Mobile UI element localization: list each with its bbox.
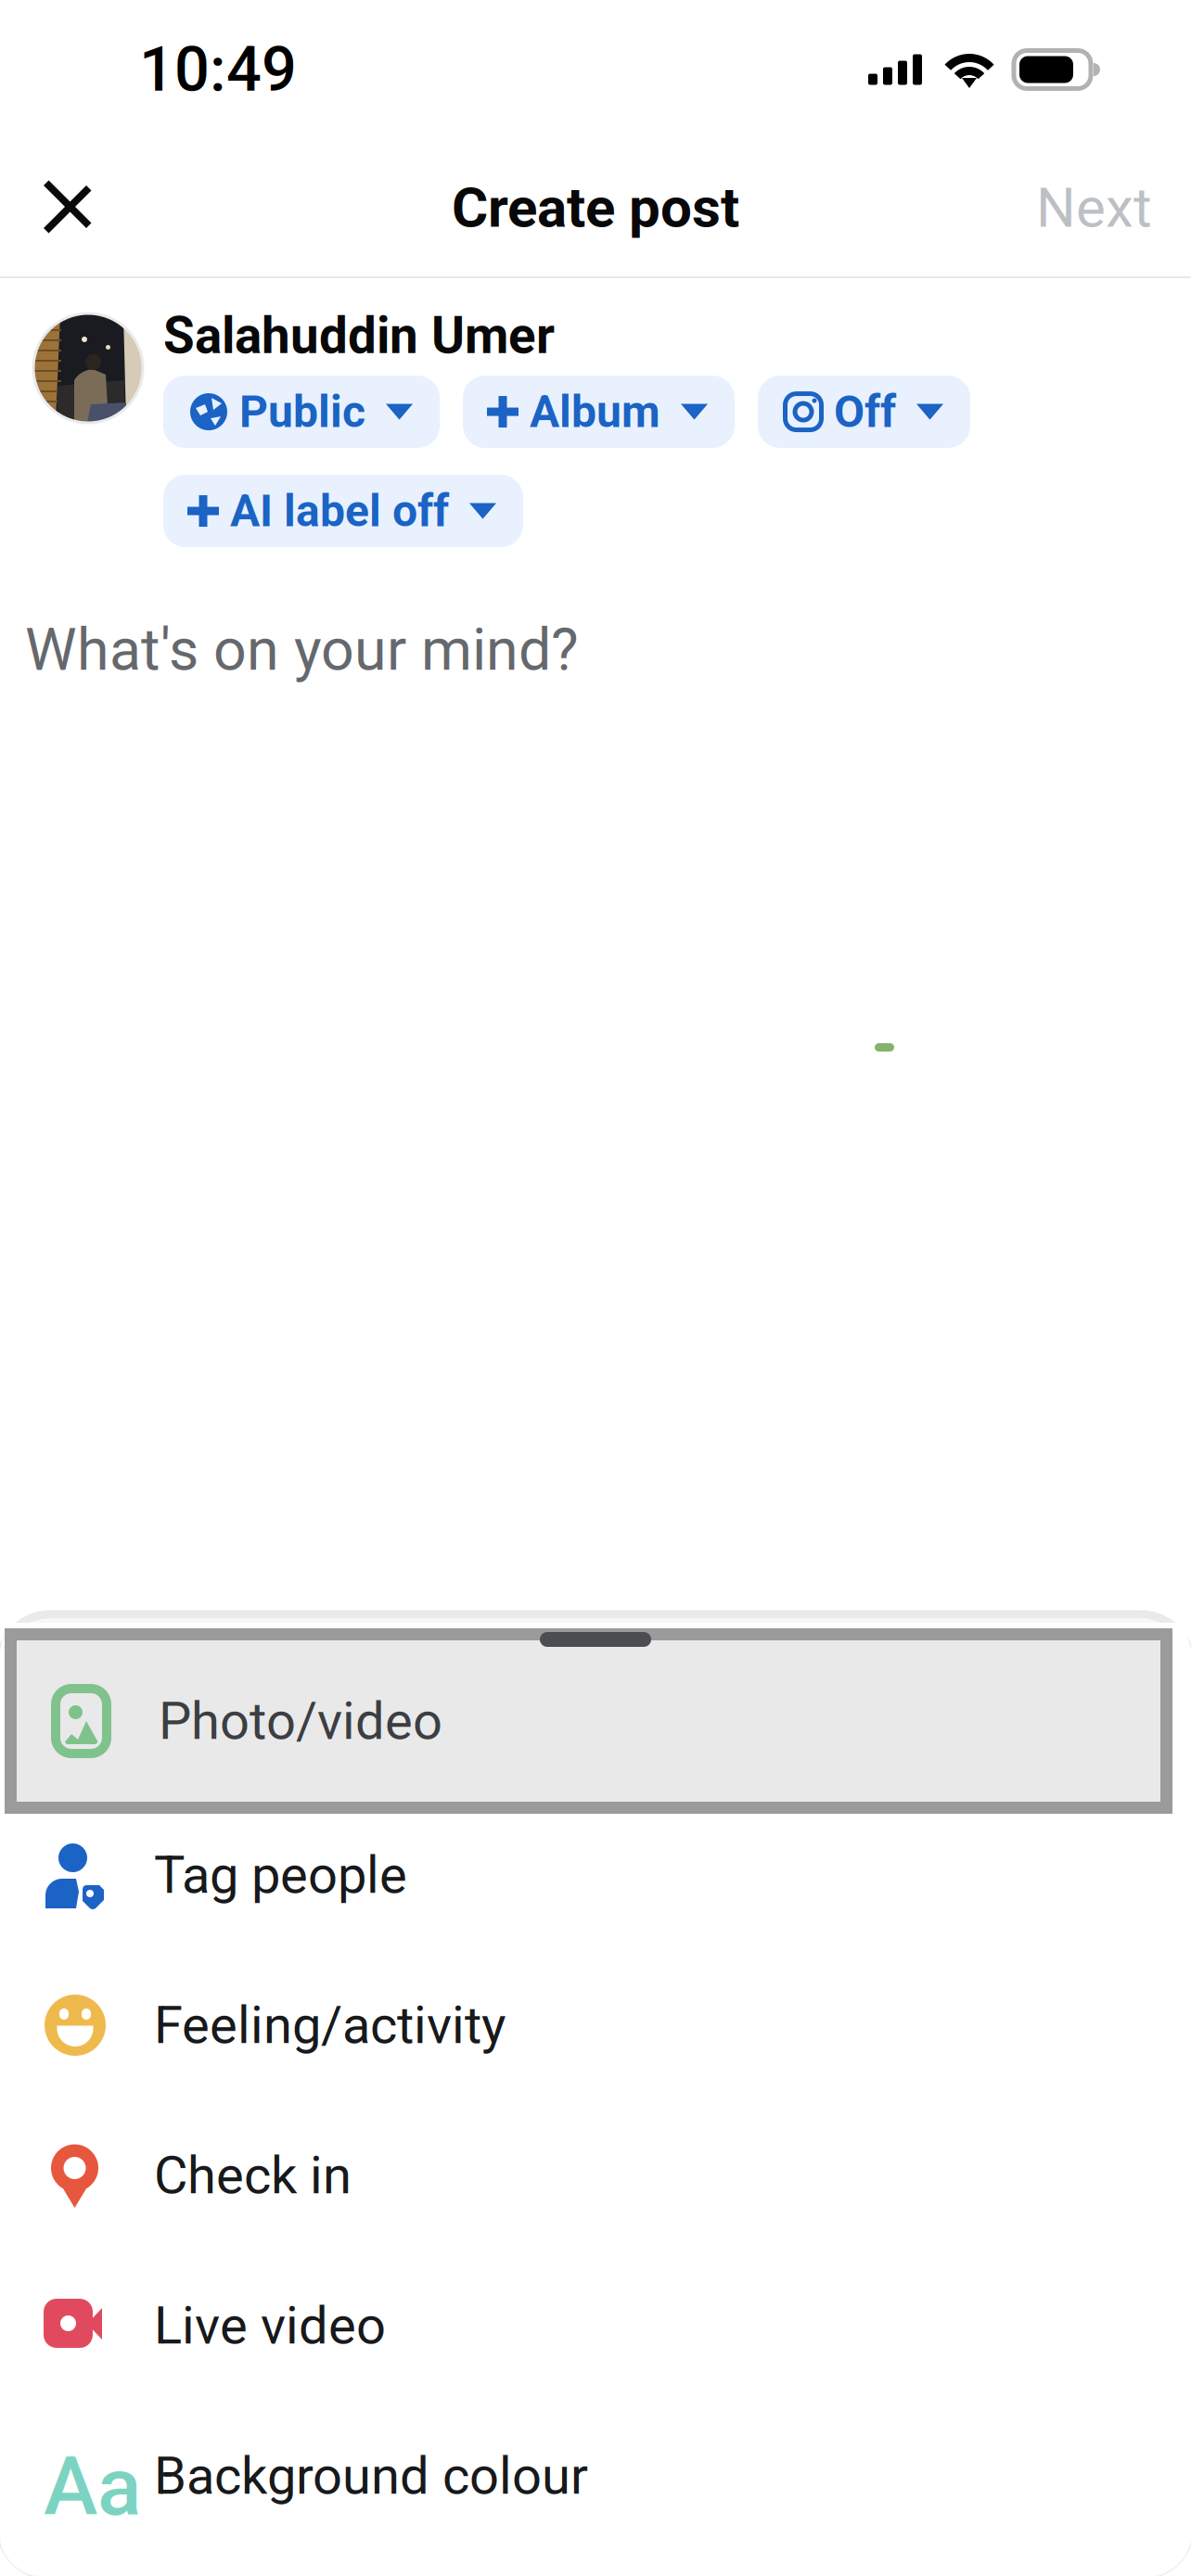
staticText: Off bbox=[834, 386, 896, 438]
button[interactable]: What's on your mind? bbox=[0, 547, 1191, 677]
staticText: Background colour bbox=[154, 2445, 588, 2506]
button[interactable]: Live video bbox=[0, 2251, 1191, 2401]
staticText: Check in bbox=[154, 2145, 352, 2206]
button[interactable]: Tag people bbox=[0, 1800, 1191, 1950]
staticText: Salahuddin Umer bbox=[163, 306, 555, 365]
staticText: Tag people bbox=[154, 1845, 407, 1905]
button[interactable]: Close bbox=[17, 157, 119, 259]
button[interactable]: Next bbox=[1036, 157, 1152, 259]
button[interactable]: Album bbox=[463, 376, 735, 448]
button[interactable]: Photo/video bbox=[5, 1628, 1172, 1814]
staticText: Photo/video bbox=[159, 1691, 442, 1751]
button[interactable]: Aa bbox=[0, 2401, 1191, 2551]
button[interactable]: AI label off bbox=[163, 475, 523, 547]
staticText: Create post bbox=[452, 175, 739, 240]
button[interactable]: Public bbox=[163, 376, 440, 448]
button[interactable]: Check in bbox=[0, 2100, 1191, 2251]
button[interactable]: Feeling/activity bbox=[0, 1950, 1191, 2100]
staticText: Next bbox=[1036, 175, 1152, 240]
staticText: Aa bbox=[44, 2439, 141, 2534]
staticText: Live video bbox=[154, 2295, 386, 2356]
staticText: Feeling/activity bbox=[154, 1995, 506, 2056]
staticText: Album bbox=[530, 386, 660, 438]
staticText: Public bbox=[239, 386, 365, 438]
staticText: What's on your mind? bbox=[25, 616, 579, 684]
staticText: 10:49 bbox=[139, 33, 297, 106]
staticText: AI label off bbox=[230, 485, 449, 537]
button[interactable]: Off bbox=[758, 376, 970, 448]
